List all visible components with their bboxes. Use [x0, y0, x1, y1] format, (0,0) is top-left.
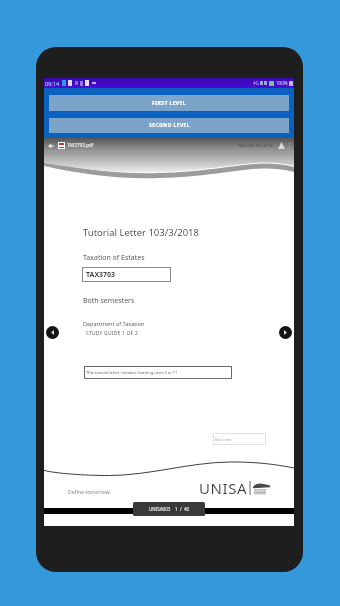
staticText: Taxation of Estates	[83, 253, 145, 263]
staticText: Both semesters	[83, 296, 135, 306]
staticText: 100%	[276, 80, 288, 86]
staticText: TAX3703	[86, 270, 116, 280]
staticText: Define tomorrow.	[68, 488, 111, 495]
staticText: UNISA003 1 / 40	[149, 506, 190, 512]
staticText: This tutorial letter contains learning u…	[86, 370, 178, 375]
staticText: 09:14	[45, 80, 60, 87]
staticText: Bar code	[215, 437, 232, 442]
staticText: Tutorial Letter 103/3/2018	[83, 226, 199, 239]
staticText: UNISA	[199, 478, 248, 498]
staticText: SECOND LEVEL	[149, 122, 190, 129]
button[interactable]: SECOND LEVEL	[49, 118, 289, 133]
staticText: TAX3703.pdf	[67, 142, 94, 148]
staticText: 4G	[253, 80, 259, 86]
staticText: FIRST LEVEL	[152, 100, 186, 107]
button[interactable]: Adobe Acrobat	[277, 141, 285, 149]
button[interactable]: Next page	[279, 326, 292, 339]
button[interactable]: More options	[287, 141, 292, 150]
button[interactable]: Back	[46, 141, 55, 150]
staticText: Department of Taxation	[83, 320, 145, 327]
button[interactable]: Previous page	[46, 326, 59, 339]
staticText: TAX3703-103-2018	[238, 143, 273, 148]
staticText: STUDY GUIDE 1 OF 2	[86, 330, 139, 337]
button[interactable]: FIRST LEVEL	[49, 95, 289, 111]
